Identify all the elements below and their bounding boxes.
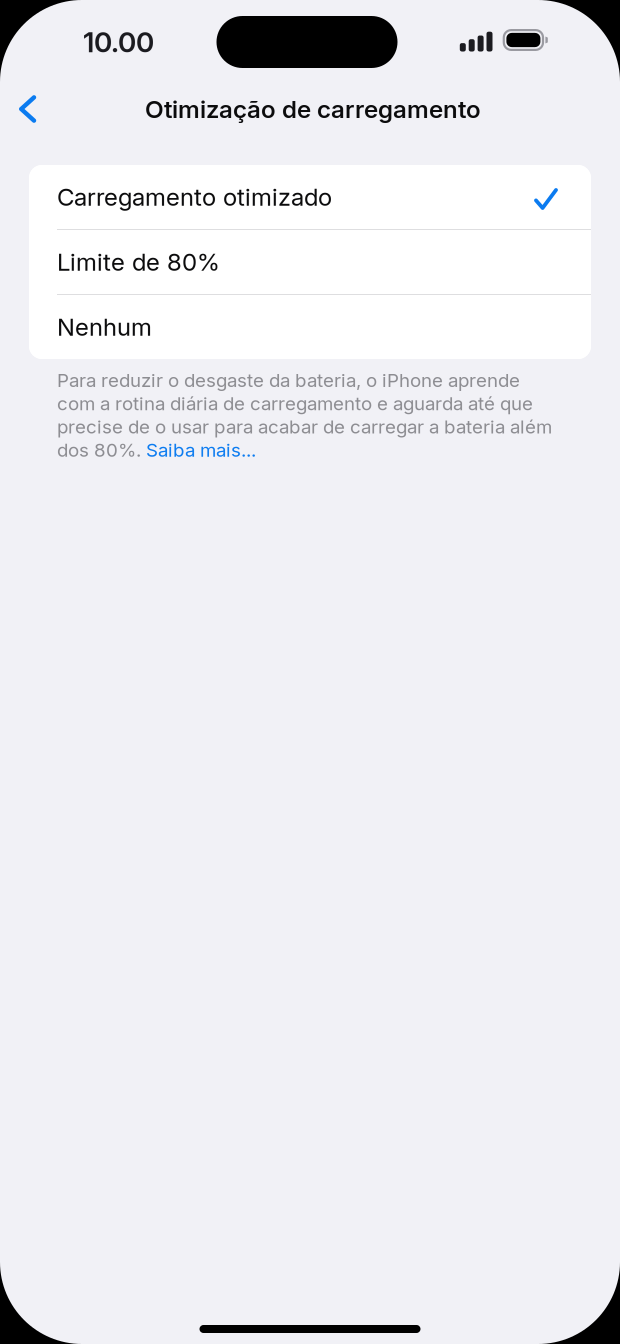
staticText: Carregamento otimizado — [57, 182, 332, 211]
button[interactable]: Carregamento otimizado — [29, 165, 591, 229]
button[interactable]: Limite de 80% — [29, 230, 591, 294]
staticText: Nenhum — [57, 312, 152, 341]
staticText: Otimização de carregamento — [145, 94, 481, 124]
staticText: 10.00 — [83, 25, 154, 59]
button[interactable]: Back — [0, 81, 59, 137]
button[interactable]: Saiba mais... — [146, 439, 256, 461]
staticText: dos 80%. — [57, 439, 146, 461]
staticText: precise de o usar para acabar de carrega… — [57, 415, 552, 438]
staticText: Para reduzir o desgaste da bateria, o iP… — [57, 369, 520, 392]
staticText: Saiba mais... — [146, 439, 256, 461]
staticText: com a rotina diária de carregamento e ag… — [57, 392, 533, 415]
staticText: Limite de 80% — [57, 247, 220, 276]
button[interactable]: Nenhum — [29, 295, 591, 359]
